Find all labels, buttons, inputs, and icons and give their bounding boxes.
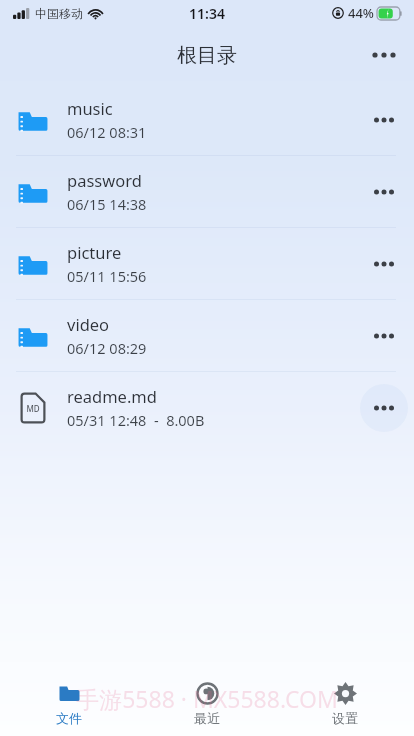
staticText: 文件 [56,710,82,726]
staticText: 05/31 12:48 - 8.00B [67,410,205,430]
staticText: picture [67,241,122,263]
button[interactable]: 文件 [0,670,138,736]
button[interactable]: music [0,84,414,155]
staticText: 06/12 08:29 [67,338,147,358]
button[interactable]: video [0,300,414,371]
button[interactable]: More options for music [360,96,408,144]
staticText: password [67,169,142,191]
button[interactable]: More options for password [360,168,408,216]
button[interactable]: More options for picture [360,240,408,288]
button[interactable]: More options for video [360,312,408,360]
button[interactable]: MD [0,372,414,443]
staticText: 最近 [194,710,220,726]
staticText: 44% [348,4,374,22]
staticText: 11:34 [189,4,225,23]
button[interactable]: 设置 [276,670,414,736]
button[interactable]: More options [360,31,408,79]
staticText: 05/11 15:56 [67,266,147,286]
staticText: music [67,97,113,119]
staticText: MD [26,403,40,414]
staticText: video [67,313,110,335]
staticText: 设置 [332,710,358,726]
staticText: 中国移动 [35,6,83,21]
button[interactable]: password [0,156,414,227]
staticText: 06/15 14:38 [67,194,147,214]
button[interactable]: picture [0,228,414,299]
button[interactable]: More options for readme.md [360,384,408,432]
staticText: 根目录 [177,43,237,68]
staticText: 06/12 08:31 [67,122,147,142]
button[interactable]: 最近 [138,670,276,736]
staticText: readme.md [67,385,157,407]
staticText: 手游5588 · MX5588.COM [76,683,338,714]
